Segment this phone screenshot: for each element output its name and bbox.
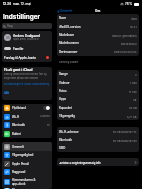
staticText: SEID <box>59 146 66 150</box>
staticText: 1.080 <box>130 81 137 84</box>
staticText: Juridisk & lovgivningsmæssig info <box>59 161 101 164</box>
staticText: Bluetooth <box>12 123 26 127</box>
button[interactable]: AS <box>2 31 52 44</box>
staticText: Bluetooth <box>59 138 73 142</box>
staticText: Skærm <box>12 188 22 189</box>
staticText: Videoer <box>59 81 70 85</box>
staticText: Serienummer <box>59 50 78 54</box>
staticText: Generelt <box>12 145 24 149</box>
button[interactable]: Se indstillinger til iCloud-synkroniseri… <box>4 83 49 86</box>
staticText: Flytilstand <box>12 106 27 110</box>
staticText: Modelnummer <box>59 41 79 45</box>
staticText: Gem og synkronisér dine billeder, filer … <box>4 73 47 80</box>
staticText: 0 <box>135 73 137 76</box>
staticText: Anders Svalgaard <box>13 34 41 38</box>
staticText: 32 GB <box>129 106 137 109</box>
staticText: man. 12. maj <box>13 2 31 6</box>
button[interactable]: Forslag til Apple-konto <box>2 53 52 62</box>
button[interactable]: Hjemmeskærm & app-dock <box>2 176 52 188</box>
staticText: iPad (9. generation) <box>112 34 137 37</box>
staticText: Forslag til Apple-konto <box>4 56 37 60</box>
staticText: Tilgængelighed <box>12 153 34 157</box>
staticText: Indstillinger <box>3 13 41 21</box>
staticText: 38 <box>133 98 137 101</box>
staticText: E0:2B:96:B2:B7:7F <box>113 130 137 133</box>
button[interactable]: Juridisk & lovgivningsmæssig info <box>57 158 139 166</box>
staticText: E0:2B:96:B2:B7:80 <box>113 139 137 142</box>
staticText: 5,71 GB <box>127 115 137 118</box>
staticText: Hjemmeskærm & app-dock <box>12 178 36 186</box>
staticText: Navn <box>59 16 67 20</box>
staticText: Familie <box>13 47 24 51</box>
staticText: Sange <box>59 72 68 76</box>
staticText: DMPXXXXXXXXX <box>114 50 137 53</box>
staticText: Wi-Fi-adresse <box>59 130 79 134</box>
button[interactable]: Familie <box>2 44 52 53</box>
staticText: Tilgængelig <box>59 114 76 118</box>
staticText: Apple Pencil <box>12 162 30 166</box>
staticText: iPadOS-version <box>59 25 81 29</box>
staticText: Lodmod <box>40 115 50 118</box>
staticText: Modelnavn <box>59 33 75 37</box>
staticText: Baggrund <box>12 170 26 174</box>
staticText: Apple-konto, iCloud m.m. <box>13 38 40 41</box>
staticText: Batteri <box>12 132 21 136</box>
button[interactable]: Bluetooth <box>2 121 52 129</box>
button[interactable]: Generelt <box>2 142 52 151</box>
button[interactable]: Tilbage til Generelt <box>57 9 73 13</box>
button[interactable]: Skærm <box>2 188 52 189</box>
staticText: Fotos <box>59 89 67 93</box>
staticText: iPad <box>131 17 137 20</box>
staticText: Apps <box>59 97 67 101</box>
button[interactable]: Baggrund <box>2 168 52 176</box>
staticText: Slå til <box>4 92 9 94</box>
button[interactable]: Batteri <box>2 129 52 138</box>
button[interactable]: Apple Pencil <box>2 159 52 168</box>
staticText: Om <box>95 9 101 13</box>
staticText: Gemning udløbet <box>59 61 79 64</box>
staticText: 18.4.1 <box>130 25 137 28</box>
staticText: 12.34 <box>3 2 11 6</box>
staticText: Søg <box>7 24 13 28</box>
staticText: AS <box>6 36 10 39</box>
button[interactable]: Slå til <box>4 91 9 94</box>
staticText: Generelt <box>60 9 73 13</box>
staticText: Wi-Fi <box>12 115 20 119</box>
staticText: 78 % <box>125 2 133 6</box>
staticText: 11.732 <box>129 90 137 93</box>
staticText: Kapacitet <box>59 106 72 110</box>
staticText: Til <box>47 124 50 127</box>
button[interactable]: Tilgængelighed <box>2 151 52 159</box>
staticText: MK2K3KN/A <box>121 42 137 45</box>
button[interactable]: Wi-Fi <box>2 112 52 121</box>
button[interactable]: Søg <box>2 23 52 29</box>
button[interactable]: Flytilstand <box>2 104 52 112</box>
staticText: Få alt gemt i iCloud <box>4 68 33 72</box>
